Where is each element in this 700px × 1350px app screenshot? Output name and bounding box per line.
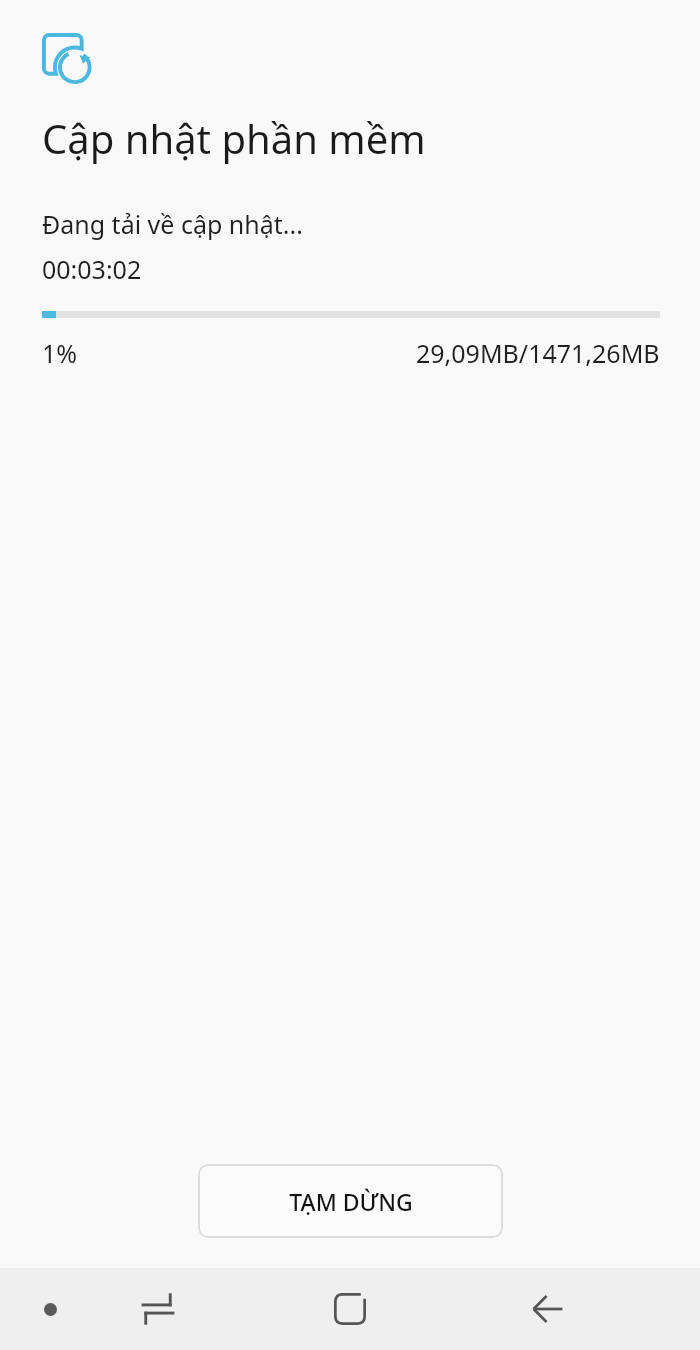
- button[interactable]: Recents: [124, 1275, 192, 1343]
- staticText: Đang tải về cập nhật...: [42, 207, 303, 241]
- button[interactable]: Back: [514, 1275, 582, 1343]
- button[interactable]: Home: [316, 1275, 384, 1343]
- staticText: Cập nhật phần mềm: [42, 111, 426, 165]
- staticText: 00:03:02: [42, 252, 142, 286]
- staticText: 29,09MB/1471,26MB: [416, 336, 660, 370]
- button[interactable]: TẠM DỪNG: [198, 1164, 503, 1238]
- staticText: TẠM DỪNG: [289, 1186, 413, 1217]
- staticText: 1%: [42, 336, 78, 370]
- button[interactable]: Indicator: [34, 1293, 66, 1325]
